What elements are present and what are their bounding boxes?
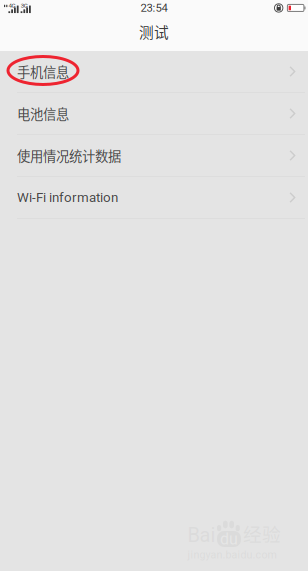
staticText: 4G <box>9 2 16 9</box>
button[interactable]: 使用情况统计数据 <box>0 135 308 177</box>
button[interactable]: 手机信息 <box>0 51 308 93</box>
staticText: du <box>220 530 238 548</box>
staticText: 手机信息 <box>17 62 69 81</box>
staticText: 23:54 <box>140 1 167 15</box>
staticText: Wi-Fi information <box>17 190 118 205</box>
button[interactable]: 电池信息 <box>0 93 308 135</box>
staticText: 使用情况统计数据 <box>17 146 121 165</box>
staticText: 3G <box>21 2 28 9</box>
staticText: 测试 <box>139 21 169 42</box>
staticText: Bai <box>187 524 215 547</box>
button[interactable]: Wi-Fi information <box>0 177 308 219</box>
staticText: 电池信息 <box>17 104 69 123</box>
